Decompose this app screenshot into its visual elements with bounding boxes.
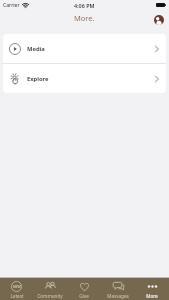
staticText: 4:06 PM (74, 2, 95, 9)
staticText: Media (27, 45, 45, 53)
staticText: Community (37, 293, 63, 299)
button[interactable]: More (135, 278, 169, 300)
staticText: Give (79, 293, 89, 299)
staticText: Carrier (3, 2, 20, 9)
button[interactable]: Messages (101, 278, 135, 300)
staticText: Latest (10, 293, 24, 299)
staticText: More. (74, 13, 95, 23)
button[interactable]: NEW (0, 278, 33, 300)
staticText: NEW (13, 285, 21, 289)
button[interactable]: Explore (3, 64, 166, 93)
staticText: Explore (27, 75, 49, 83)
button[interactable]: Profile (154, 15, 164, 25)
button[interactable]: Give (67, 278, 101, 300)
staticText: Messages (107, 293, 129, 299)
button[interactable]: Media (3, 34, 166, 63)
button[interactable]: Community (33, 278, 67, 300)
staticText: More (146, 293, 158, 299)
